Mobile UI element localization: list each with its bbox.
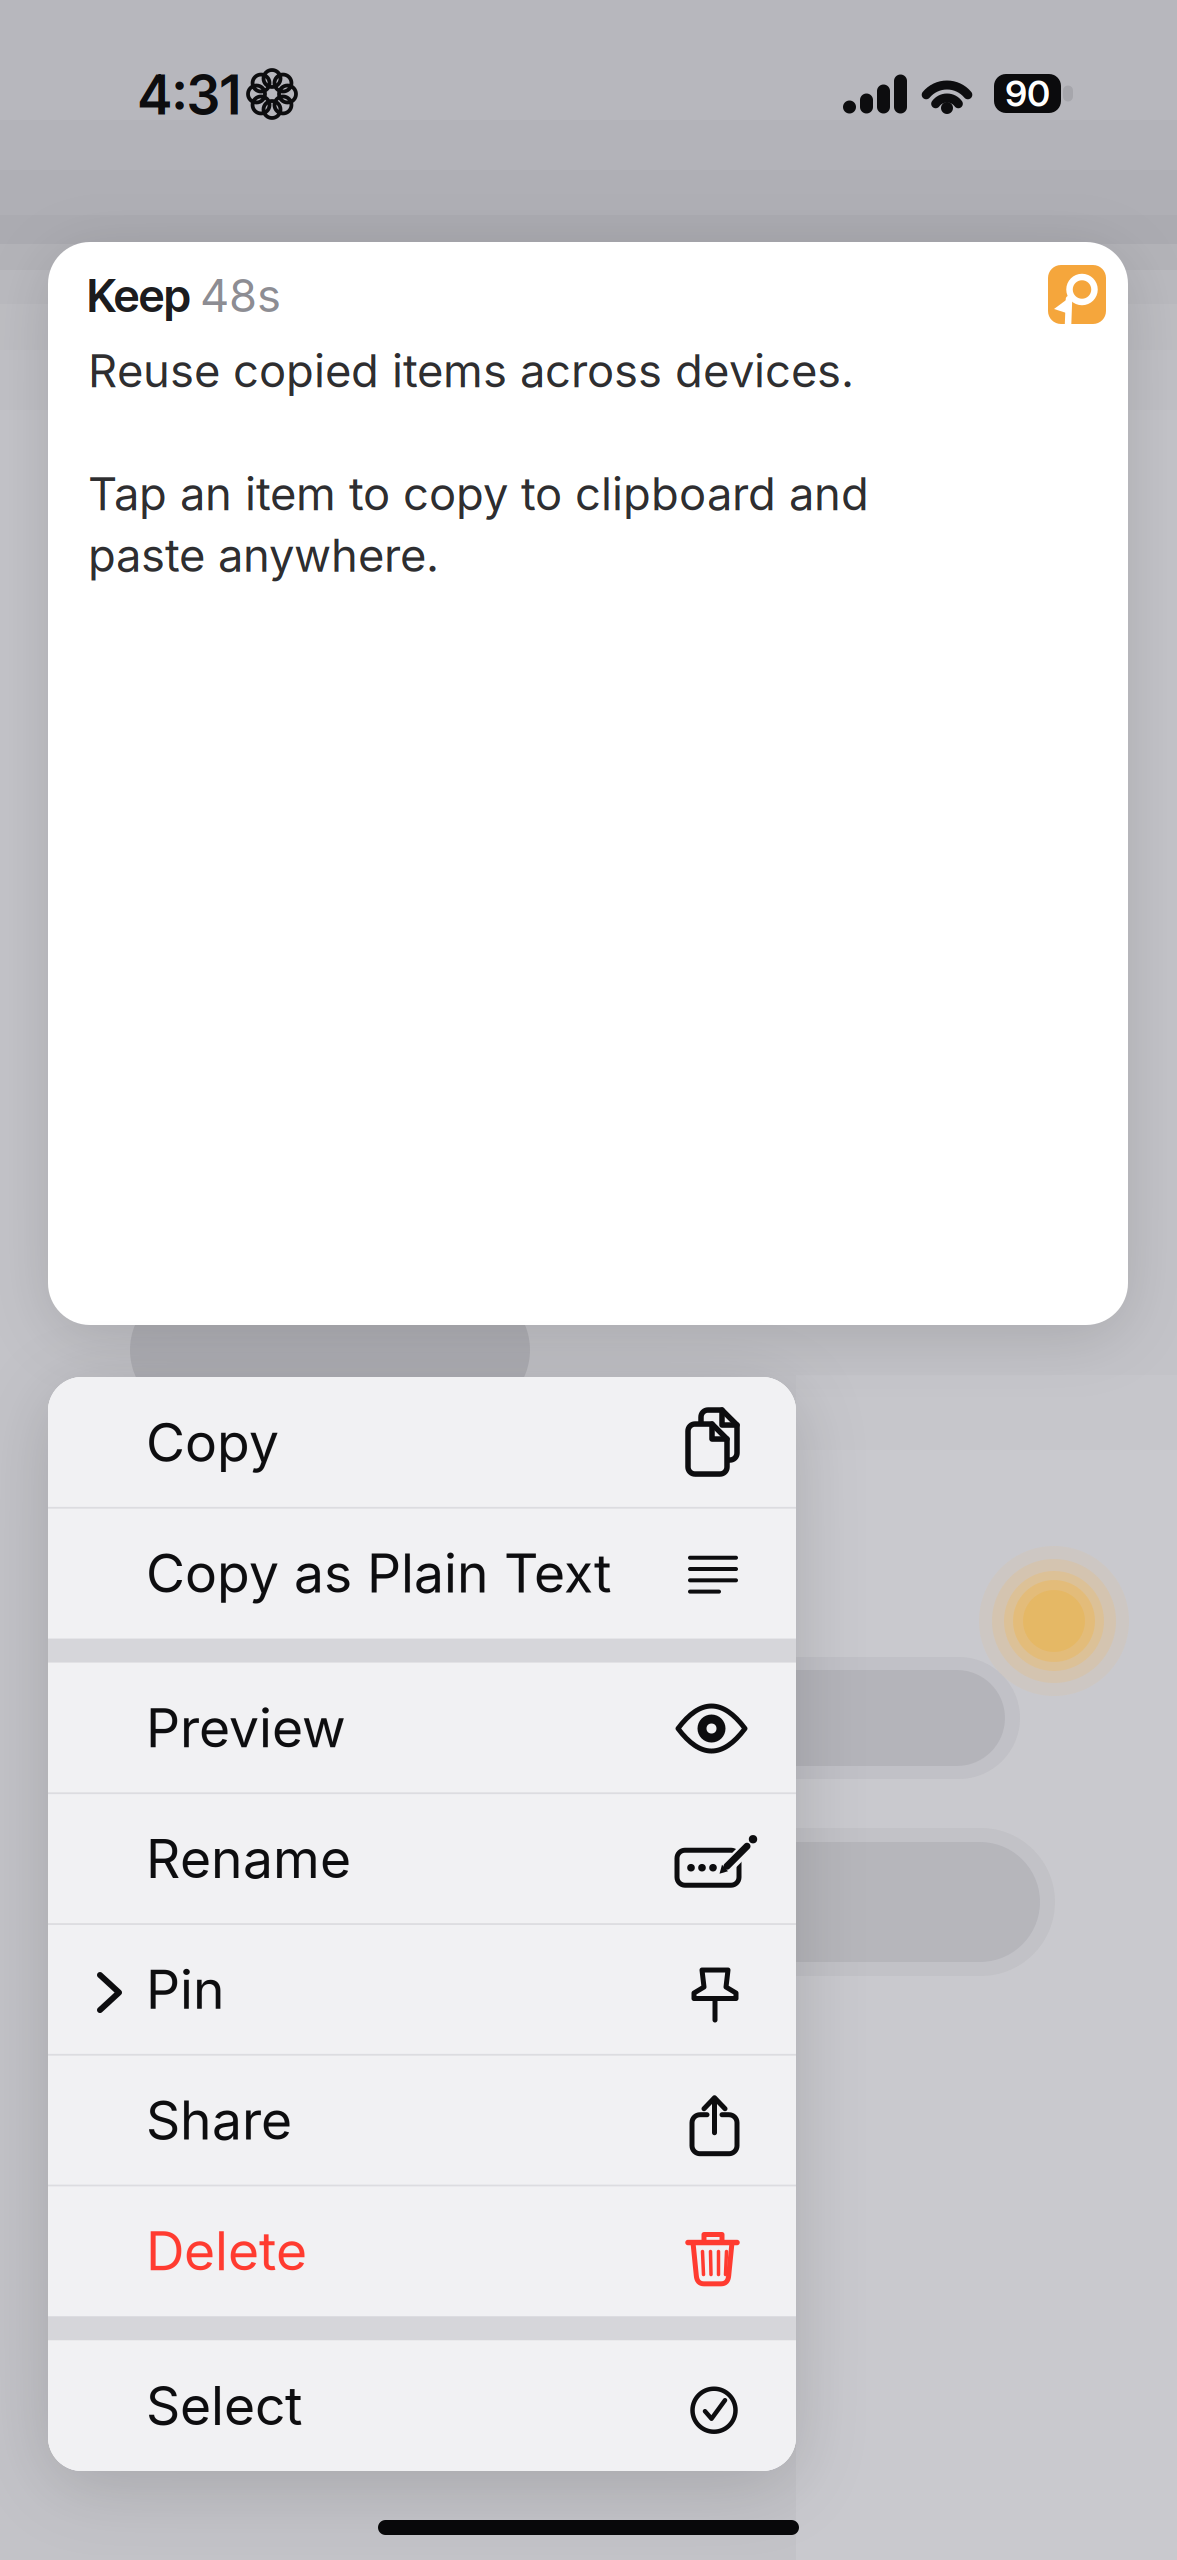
button[interactable]: Rename xyxy=(48,1793,796,1924)
staticText: Share xyxy=(146,2088,292,2152)
button[interactable]: Select xyxy=(48,2340,796,2471)
button[interactable]: Preview xyxy=(48,1662,796,1793)
staticText: Keep xyxy=(87,268,191,323)
staticText: Copy as Plain Text xyxy=(146,1541,611,1605)
staticText: 4:31 xyxy=(138,63,241,127)
staticText: Reuse copied items across devices. Tap a… xyxy=(88,340,869,586)
staticText: 48s xyxy=(200,268,281,323)
button[interactable]: Copy xyxy=(48,1377,796,1508)
button[interactable]: Keep xyxy=(48,242,1128,1325)
staticText: Preview xyxy=(146,1696,346,1760)
staticText: Pin xyxy=(146,1957,225,2022)
staticText: Copy xyxy=(146,1410,279,1475)
staticText: Rename xyxy=(146,1826,351,1891)
staticText: Delete xyxy=(146,2219,307,2283)
staticText: 90 xyxy=(1005,72,1050,115)
button[interactable]: Pin xyxy=(48,1924,796,2055)
button[interactable]: Copy as Plain Text xyxy=(48,1508,796,1638)
button[interactable]: Delete xyxy=(48,2185,796,2316)
button[interactable]: Share xyxy=(48,2055,796,2185)
staticText: Select xyxy=(146,2373,302,2438)
